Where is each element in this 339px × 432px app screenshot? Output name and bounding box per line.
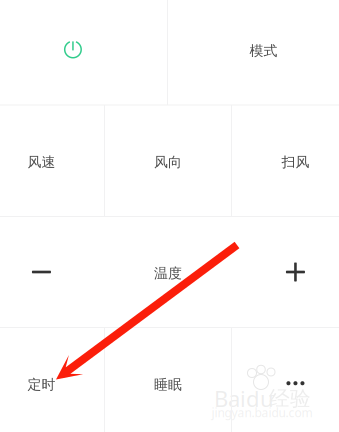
staticText: Baidu: [214, 383, 274, 413]
button[interactable]: Increase temperature: [231, 216, 339, 327]
staticText: 经验: [269, 385, 311, 411]
button[interactable]: [231, 105, 339, 216]
button[interactable]: Power: [0, 0, 167, 105]
staticText: 定时: [27, 376, 55, 393]
staticText: 模式: [249, 42, 277, 60]
button[interactable]: [0, 105, 104, 216]
button[interactable]: [0, 327, 104, 432]
button[interactable]: More options: [231, 327, 339, 432]
staticText: 扫风: [281, 153, 309, 171]
staticText: 风速: [27, 153, 55, 171]
button[interactable]: [104, 216, 231, 327]
staticText: jingyan.baidu.com: [211, 404, 312, 421]
button[interactable]: [104, 105, 231, 216]
button[interactable]: [167, 0, 339, 105]
staticText: 睡眠: [154, 376, 182, 393]
button[interactable]: [104, 327, 231, 432]
button[interactable]: Decrease temperature: [0, 216, 104, 327]
staticText: 风向: [154, 153, 182, 171]
staticText: 温度: [154, 265, 182, 282]
